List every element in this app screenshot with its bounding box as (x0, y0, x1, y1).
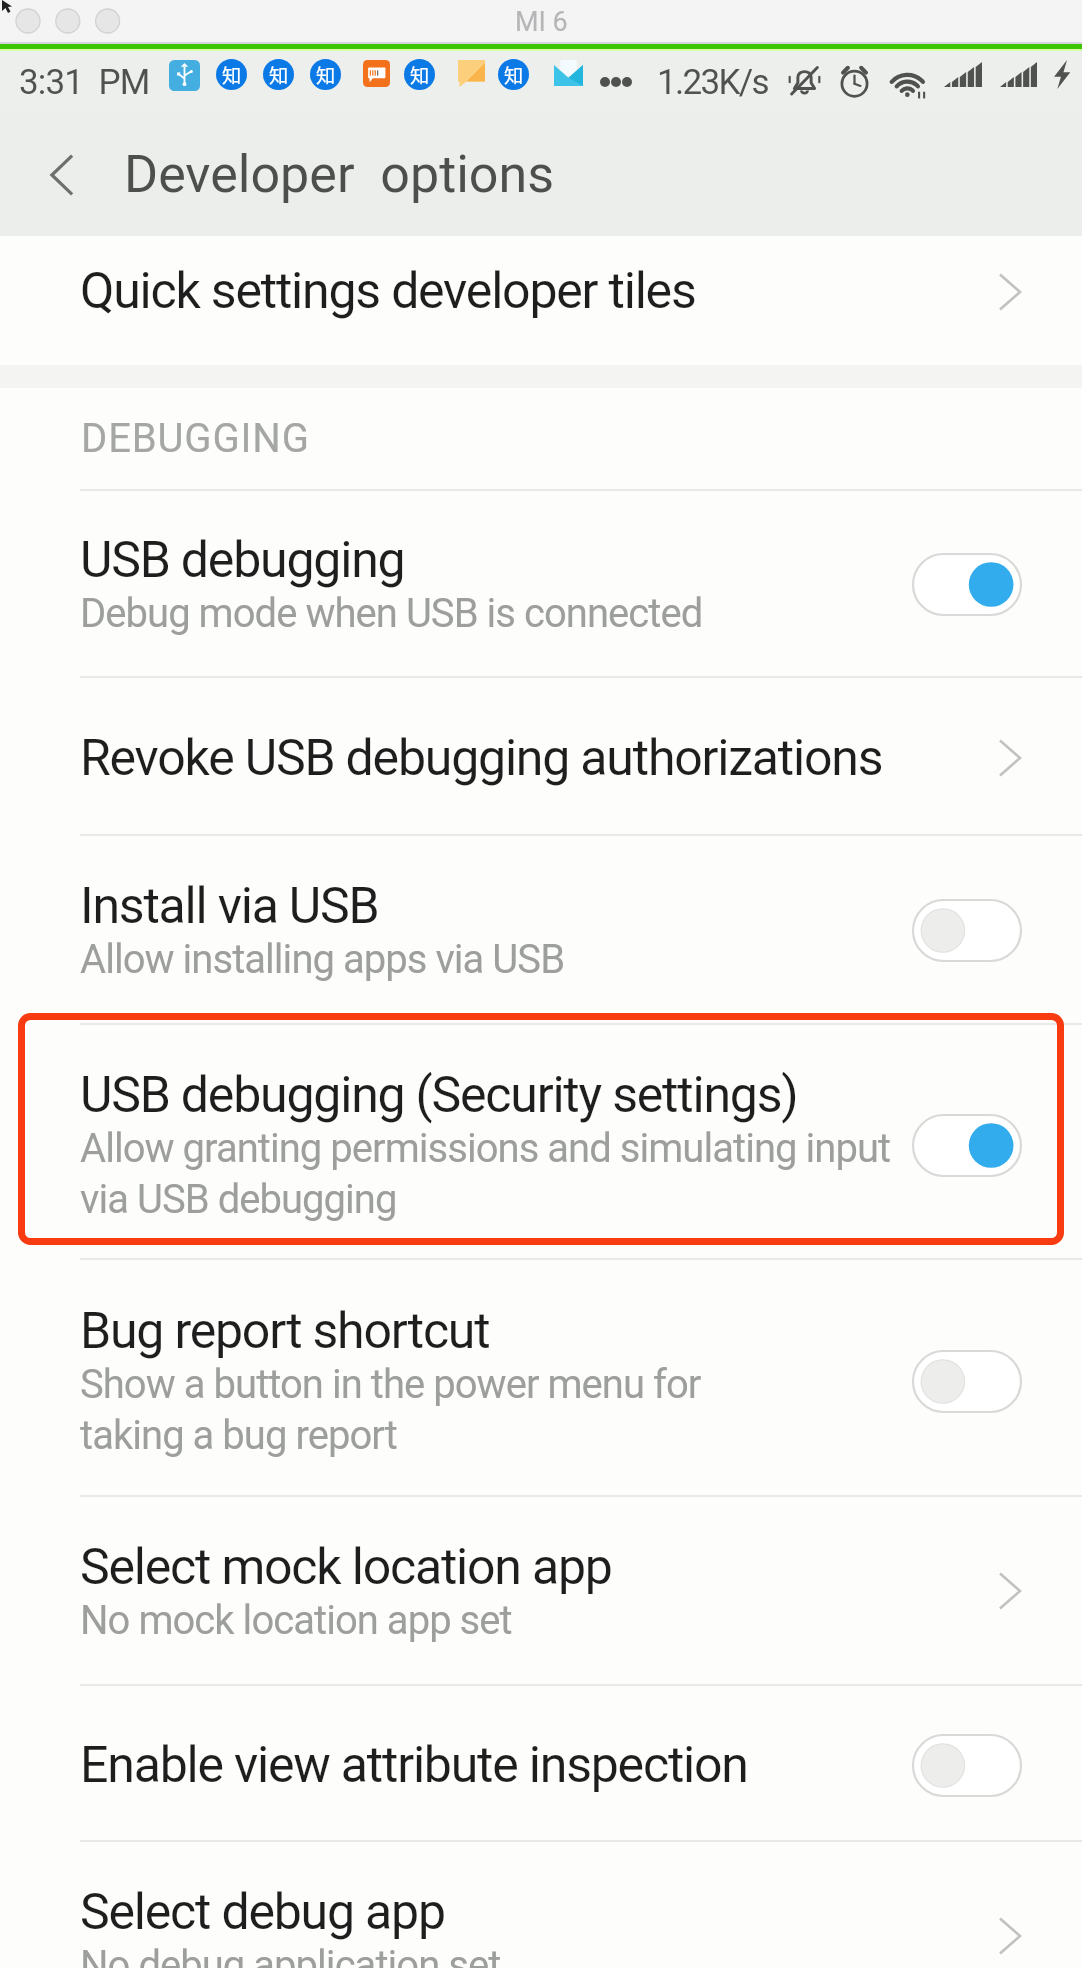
staticText: Bug report shortcut (80, 1302, 490, 1361)
staticText: USB debugging (Security settings) (80, 1066, 798, 1125)
staticText: 知 (269, 61, 289, 89)
staticText: Select debug app (80, 1883, 445, 1942)
staticText: Install via USB (80, 877, 379, 936)
staticText: Quick settings developer tiles (80, 262, 696, 321)
staticText: MI 6 (515, 6, 568, 38)
button[interactable]: Enable view attribute inspection (0, 1688, 1082, 1842)
staticText: Developer options (124, 144, 555, 205)
button[interactable]: USB debugging (Security settings) (0, 1028, 1082, 1261)
staticText: 知 (410, 61, 430, 89)
button[interactable]: Select debug app (0, 1873, 1082, 1968)
staticText: Revoke USB debugging authorizations (80, 729, 883, 788)
staticText: 知 (504, 61, 524, 89)
staticText: Allow installing apps via USB (80, 936, 565, 983)
staticText: DEBUGGING (81, 415, 310, 462)
button[interactable]: USB debugging security settings toggle (852, 1095, 1082, 1195)
button[interactable]: Install via USB (0, 836, 1082, 1023)
staticText: 3:31 PM (19, 62, 150, 103)
button[interactable]: Back (0, 113, 124, 236)
button[interactable]: Revoke USB debugging authorizations (0, 680, 1082, 836)
button[interactable]: Quick settings developer tiles (0, 227, 1082, 356)
button[interactable]: Bug report shortcut toggle (852, 1331, 1082, 1431)
staticText: Show a button in the power menu for taki… (80, 1361, 701, 1459)
staticText: 知 (316, 61, 336, 89)
staticText: Select mock location app (80, 1538, 612, 1597)
staticText: Debug mode when USB is connected (80, 590, 703, 637)
button[interactable]: Bug report shortcut (0, 1263, 1082, 1498)
button[interactable]: Enable view attribute inspection toggle (852, 1715, 1082, 1815)
staticText: Allow granting permissions and simulatin… (80, 1125, 848, 1223)
button[interactable]: USB debugging (0, 491, 1082, 676)
button[interactable]: Install via USB toggle (852, 880, 1082, 980)
staticText: No mock location app set (80, 1597, 512, 1644)
staticText: USB debugging (80, 531, 405, 590)
button[interactable]: Select mock location app (0, 1497, 1082, 1684)
staticText: 知 (222, 61, 242, 89)
staticText: Enable view attribute inspection (80, 1736, 748, 1795)
staticText: No debug application set (80, 1942, 501, 1968)
button[interactable]: USB debugging toggle (852, 534, 1082, 634)
staticText: 1.23K/s (657, 62, 768, 103)
